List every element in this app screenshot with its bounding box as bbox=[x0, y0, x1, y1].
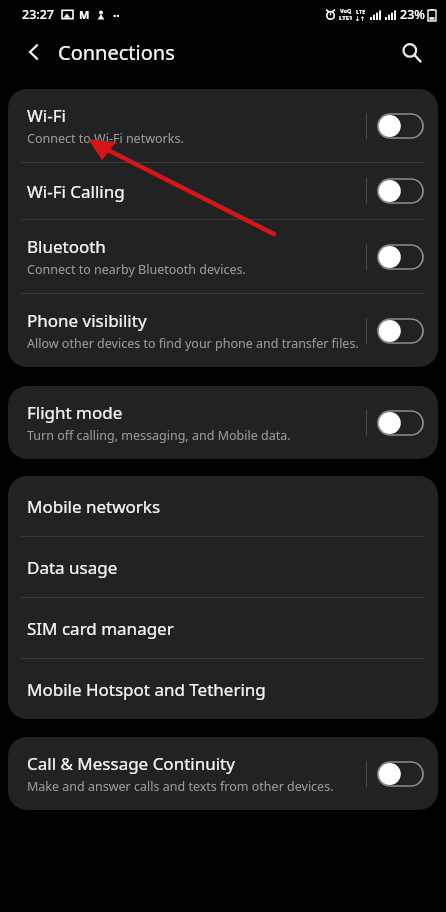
button[interactable]: Back bbox=[12, 30, 56, 74]
button[interactable]: Data usage bbox=[8, 537, 438, 597]
staticText: Wi-Fi bbox=[27, 104, 66, 127]
staticText: Flight mode bbox=[27, 401, 123, 424]
staticText: VoQ bbox=[340, 7, 352, 14]
staticText: M bbox=[79, 7, 90, 22]
button[interactable]: Wi-Fi bbox=[8, 89, 438, 162]
staticText: Data usage bbox=[27, 556, 118, 579]
button[interactable]: Search bbox=[389, 30, 433, 74]
button[interactable]: Call & Message Continuity switch, off bbox=[378, 762, 423, 786]
button[interactable]: Wi-Fi switch, off bbox=[378, 114, 423, 138]
button[interactable]: Wi-Fi Calling switch, off bbox=[378, 179, 423, 203]
staticText: SIM card manager bbox=[27, 617, 174, 640]
staticText: Turn off calling, messaging, and Mobile … bbox=[27, 427, 291, 444]
staticText: Allow other devices to find your phone a… bbox=[27, 335, 359, 352]
staticText: Make and answer calls and texts from oth… bbox=[27, 778, 334, 795]
button[interactable]: Phone visibility switch, off bbox=[378, 319, 423, 343]
button[interactable]: Bluetooth bbox=[8, 220, 438, 293]
staticText: Call & Message Continuity bbox=[27, 752, 235, 775]
staticText: Wi-Fi Calling bbox=[27, 180, 125, 203]
button[interactable]: Mobile networks bbox=[8, 476, 438, 536]
button[interactable]: Wi-Fi Calling bbox=[8, 163, 438, 219]
staticText: Connections bbox=[58, 39, 175, 66]
button[interactable]: Flight mode switch, off bbox=[378, 411, 423, 435]
staticText: Mobile networks bbox=[27, 495, 161, 518]
button[interactable]: Phone visibility bbox=[8, 294, 438, 367]
button[interactable]: Flight mode bbox=[8, 386, 438, 459]
staticText: LTE bbox=[356, 8, 366, 15]
staticText: Bluetooth bbox=[27, 235, 106, 258]
button[interactable]: Bluetooth switch, off bbox=[378, 245, 423, 269]
staticText: 23% bbox=[400, 6, 425, 23]
staticText: ·· bbox=[113, 7, 120, 23]
button[interactable]: Mobile Hotspot and Tethering bbox=[8, 659, 438, 719]
staticText: 23:27 bbox=[22, 6, 55, 23]
button[interactable]: Call & Message Continuity bbox=[8, 737, 438, 810]
staticText: Connect to Wi-Fi networks. bbox=[27, 130, 184, 147]
staticText: Connect to nearby Bluetooth devices. bbox=[27, 261, 246, 278]
staticText: Mobile Hotspot and Tethering bbox=[27, 678, 266, 701]
staticText: LTE1 bbox=[339, 14, 353, 22]
button[interactable]: SIM card manager bbox=[8, 598, 438, 658]
staticText: Phone visibility bbox=[27, 309, 147, 332]
staticText: ↓↑ bbox=[355, 15, 366, 22]
